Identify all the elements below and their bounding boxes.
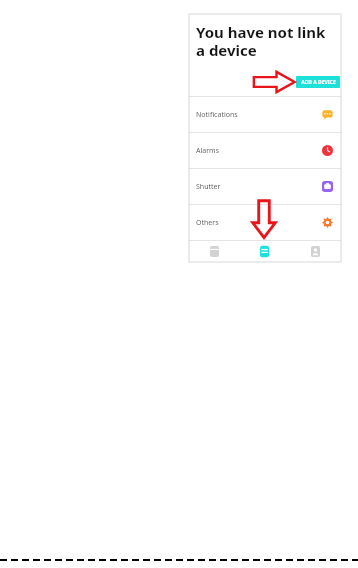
staticText: Shutter bbox=[196, 182, 221, 192]
button[interactable]: Notifications bbox=[189, 97, 341, 132]
button[interactable]: Others bbox=[189, 205, 341, 240]
staticText: Notifications bbox=[196, 110, 238, 120]
staticText: Others bbox=[196, 218, 219, 228]
button[interactable]: Alarms bbox=[189, 133, 341, 168]
staticText: Alarms bbox=[196, 146, 219, 156]
button[interactable]: Profile bbox=[290, 241, 341, 262]
button[interactable]: ADD A DEVICE bbox=[296, 76, 340, 88]
button[interactable]: Shutter bbox=[189, 169, 341, 204]
button[interactable]: Devices bbox=[189, 241, 239, 262]
staticText: ADD A DEVICE bbox=[301, 79, 336, 86]
staticText: You have not link a device bbox=[196, 22, 331, 61]
button[interactable]: Band bbox=[239, 241, 290, 262]
